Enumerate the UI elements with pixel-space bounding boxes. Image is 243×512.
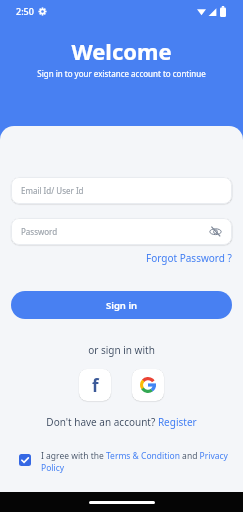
staticText: f — [92, 374, 99, 397]
button[interactable]: Email Id/ User Id — [21, 177, 222, 204]
staticText: or sign in with — [11, 343, 232, 357]
staticText: Welcome — [0, 36, 243, 66]
button[interactable]: Password — [21, 218, 222, 245]
staticText: 2:50 — [16, 5, 34, 17]
button[interactable]: Sign in — [11, 291, 232, 319]
button[interactable]: Forgot Password ? — [146, 251, 232, 265]
staticText: Email Id/ User Id — [21, 185, 222, 196]
staticText: Sign in — [106, 299, 138, 312]
staticText: I agree with the Terms & Condition and P… — [41, 450, 228, 474]
button[interactable] — [19, 454, 31, 466]
staticText: Password — [21, 226, 209, 237]
button[interactable]: Don't have an account? Register — [11, 415, 232, 429]
button[interactable] — [132, 369, 164, 401]
button[interactable]: f — [79, 369, 111, 401]
staticText: Sign in to your existance account to con… — [0, 68, 243, 79]
